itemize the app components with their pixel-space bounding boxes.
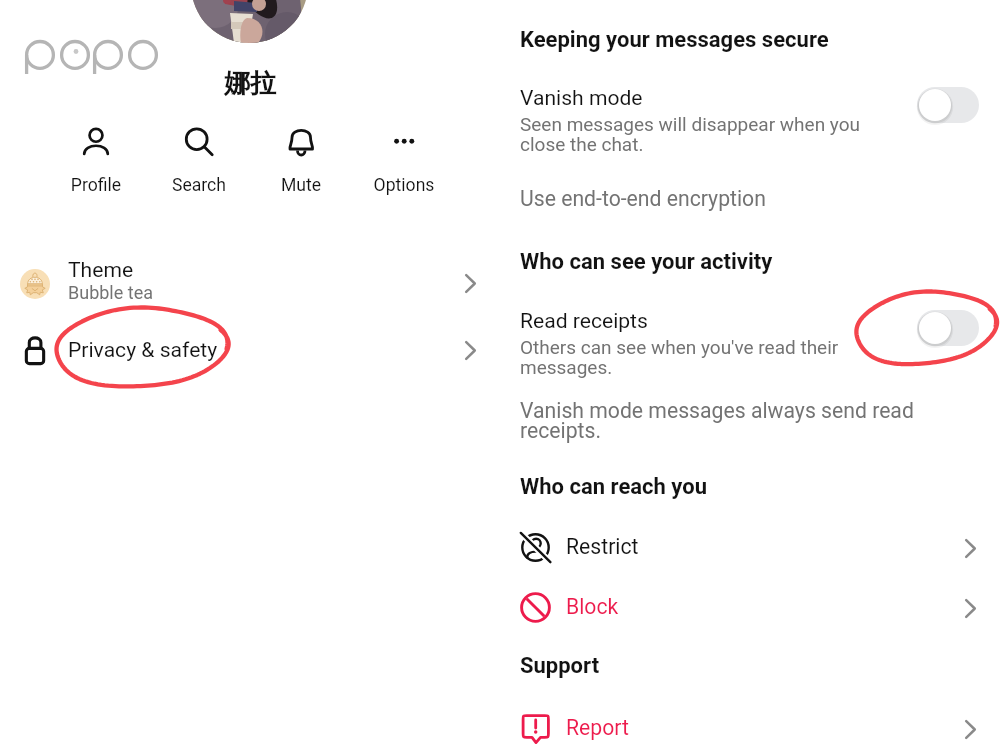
staticText: Seen messages will disappear when you cl…: [520, 113, 860, 156]
staticText: Use end-to-end encryption: [520, 186, 766, 211]
staticText: Vanish mode: [520, 85, 643, 110]
staticText: Read receipts: [520, 308, 648, 333]
staticText: Privacy & safety: [68, 337, 218, 362]
staticText: Who can see your activity: [520, 249, 773, 275]
staticText: Others can see when you've read their me…: [520, 336, 839, 379]
staticText: Search: [153, 175, 245, 196]
button[interactable]: Mute: [255, 120, 347, 197]
button[interactable]: Restrict: [500, 519, 1000, 575]
staticText: Mute: [255, 175, 347, 196]
staticText: Options: [358, 175, 450, 196]
button[interactable]: Options: [358, 120, 450, 197]
button[interactable]: Block: [500, 579, 1000, 635]
button[interactable]: Read receipts: [917, 310, 979, 346]
button[interactable]: Read receipts: [500, 308, 1000, 382]
button[interactable]: Theme: [0, 254, 500, 314]
staticText: Restrict: [566, 534, 639, 559]
button[interactable]: Vanish mode: [500, 85, 1000, 159]
button[interactable]: Privacy & safety: [0, 321, 500, 381]
staticText: Profile: [50, 175, 142, 196]
staticText: Bubble tea: [68, 282, 153, 303]
staticText: Report: [566, 715, 629, 740]
staticText: Block: [566, 594, 619, 619]
staticText: Support: [520, 653, 600, 679]
staticText: Theme: [68, 257, 134, 282]
staticText: Keeping your messages secure: [520, 27, 829, 53]
staticText: Who can reach you: [520, 474, 708, 500]
staticText: Vanish mode messages always send read re…: [520, 398, 914, 443]
button[interactable]: Vanish mode: [917, 87, 979, 123]
staticText: 娜拉: [180, 67, 320, 100]
button[interactable]: Report: [500, 700, 1000, 750]
button[interactable]: Profile: [50, 120, 142, 197]
button[interactable]: Search: [153, 120, 245, 197]
